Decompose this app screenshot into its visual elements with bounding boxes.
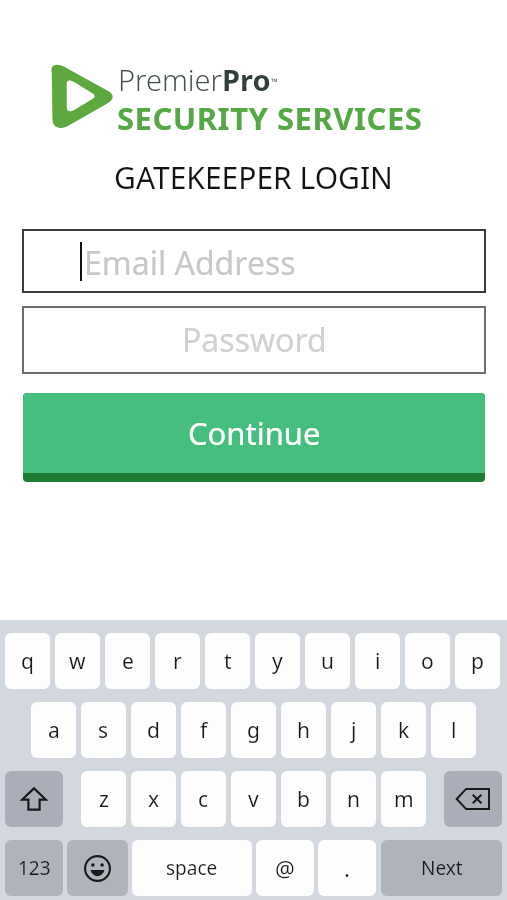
staticText: z	[99, 785, 109, 814]
staticText: o	[421, 647, 434, 676]
staticText: u	[321, 647, 334, 676]
button[interactable]: s	[81, 702, 126, 758]
button[interactable]: space	[132, 840, 252, 896]
staticText: b	[297, 785, 310, 814]
button[interactable]: key	[67, 840, 128, 896]
staticText: v	[248, 785, 259, 814]
staticText: r	[173, 647, 182, 676]
button[interactable]: i	[355, 633, 400, 689]
staticText: m	[394, 785, 414, 814]
button[interactable]: d	[131, 702, 176, 758]
button[interactable]: l	[431, 702, 476, 758]
button[interactable]: r	[155, 633, 200, 689]
staticText: i	[375, 647, 381, 676]
staticText: c	[198, 785, 209, 814]
staticText: q	[21, 647, 34, 676]
button[interactable]: c	[181, 771, 226, 827]
staticText: Next	[421, 855, 463, 881]
staticText: s	[98, 716, 109, 745]
staticText: GATEKEEPER LOGIN	[114, 157, 393, 198]
staticText: n	[347, 785, 360, 814]
staticText: 123	[18, 855, 51, 881]
other: Backspace	[456, 787, 490, 811]
button[interactable]: n	[331, 771, 376, 827]
button[interactable]: q	[5, 633, 50, 689]
staticText: x	[148, 785, 160, 814]
staticText: a	[48, 716, 60, 745]
staticText: t	[224, 647, 232, 676]
button[interactable]: .	[318, 840, 376, 896]
staticText: j	[351, 716, 357, 745]
staticText: k	[398, 716, 410, 745]
button[interactable]: t	[205, 633, 250, 689]
button[interactable]: Email Address	[22, 229, 486, 293]
staticText: Email Address	[84, 241, 296, 285]
button[interactable]: Password	[22, 306, 486, 374]
button[interactable]: f	[181, 702, 226, 758]
button[interactable]: key	[5, 771, 63, 827]
staticText: SECURITY SERVICES	[117, 97, 423, 139]
button[interactable]: u	[305, 633, 350, 689]
staticText: @	[275, 853, 295, 883]
staticText: d	[147, 716, 160, 745]
button[interactable]: g	[231, 702, 276, 758]
staticText: p	[471, 647, 484, 676]
staticText: .	[344, 853, 350, 883]
button[interactable]: Next	[381, 840, 502, 896]
button[interactable]: z	[81, 771, 126, 827]
staticText: f	[200, 716, 208, 745]
button[interactable]: Continue	[23, 393, 485, 482]
staticText: Continue	[188, 412, 321, 454]
button[interactable]: @	[256, 840, 314, 896]
staticText: ™	[271, 75, 278, 87]
other: Shift	[20, 785, 48, 813]
staticText: h	[297, 716, 310, 745]
staticText: l	[451, 716, 457, 745]
button[interactable]: w	[55, 633, 100, 689]
staticText: w	[69, 647, 86, 676]
button[interactable]: key	[444, 771, 502, 827]
staticText: y	[272, 647, 283, 676]
button[interactable]: o	[405, 633, 450, 689]
button[interactable]: y	[255, 633, 300, 689]
button[interactable]: h	[281, 702, 326, 758]
button[interactable]: m	[381, 771, 426, 827]
other: Emoji	[84, 855, 111, 882]
button[interactable]: x	[131, 771, 176, 827]
button[interactable]: a	[31, 702, 76, 758]
staticText: space	[166, 855, 218, 881]
button[interactable]: j	[331, 702, 376, 758]
staticText: Password	[182, 318, 327, 362]
staticText: g	[247, 716, 260, 745]
button[interactable]: k	[381, 702, 426, 758]
button[interactable]: v	[231, 771, 276, 827]
button[interactable]: 123	[5, 840, 63, 896]
staticText: e	[122, 647, 134, 676]
button[interactable]: p	[455, 633, 500, 689]
button[interactable]: e	[105, 633, 150, 689]
staticText: Pro	[222, 60, 271, 99]
button[interactable]: b	[281, 771, 326, 827]
staticText: Premier	[118, 60, 222, 99]
